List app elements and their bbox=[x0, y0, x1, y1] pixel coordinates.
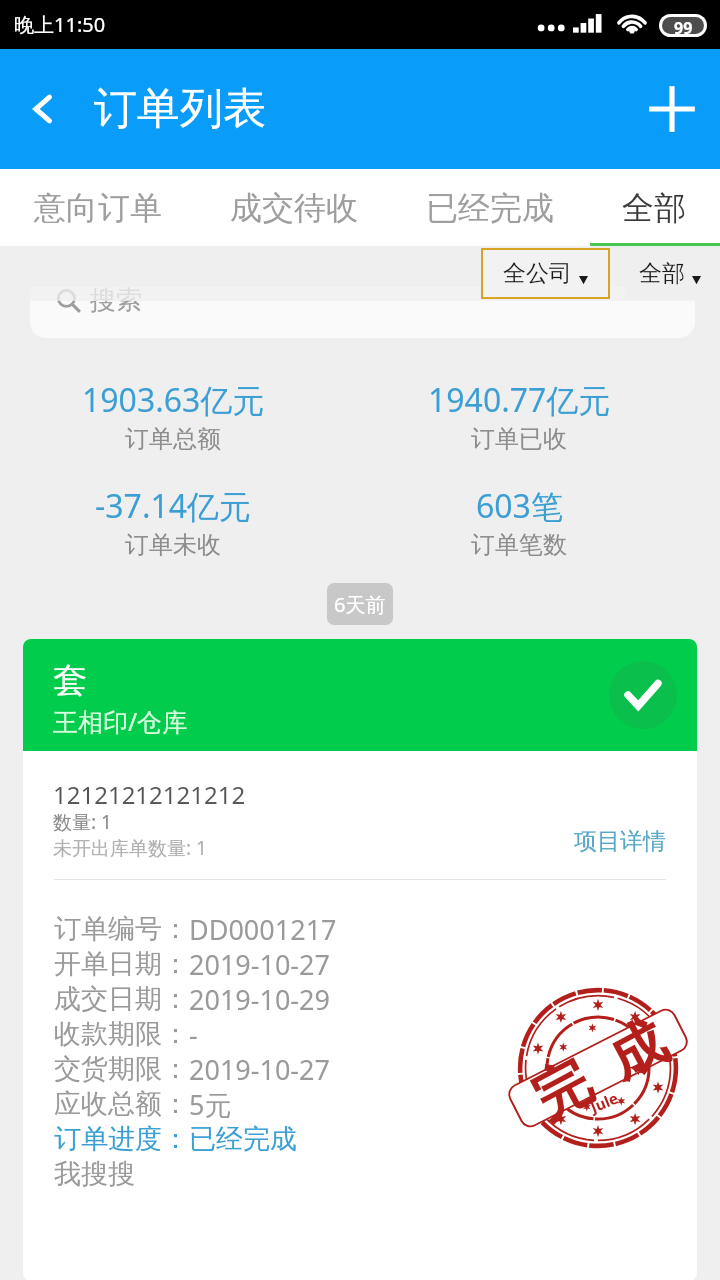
button[interactable]: 已经完成 bbox=[392, 169, 588, 246]
staticText: 订单进度： bbox=[54, 1122, 189, 1156]
staticText: DD0001217 bbox=[189, 911, 337, 946]
staticText: 2019-10-29 bbox=[189, 981, 330, 1016]
staticText: 订单编号： bbox=[54, 912, 189, 946]
staticText: 1940.77亿元 bbox=[428, 378, 611, 422]
staticText: 开单日期： bbox=[54, 947, 189, 981]
staticText: 5元 bbox=[189, 1086, 232, 1121]
staticText: 交货期限： bbox=[54, 1052, 189, 1086]
button[interactable]: 成交待收 bbox=[196, 169, 392, 246]
staticText: 已经完成 bbox=[189, 1122, 297, 1156]
staticText: Jule bbox=[587, 1087, 622, 1117]
staticText: 已经完成 bbox=[426, 188, 554, 228]
staticText: 订单笔数 bbox=[471, 530, 567, 560]
staticText: 我搜搜 bbox=[54, 1157, 135, 1191]
button[interactable]: Back bbox=[0, 49, 86, 169]
staticText: 王相印/仓库 bbox=[53, 704, 188, 738]
staticText: 意向订单 bbox=[34, 188, 162, 228]
staticText: 6天前 bbox=[334, 591, 386, 618]
button[interactable]: 全部 bbox=[588, 169, 720, 246]
staticText: 1903.63亿元 bbox=[82, 378, 265, 422]
button[interactable]: 全公司 bbox=[481, 248, 610, 299]
staticText: 全部 bbox=[639, 259, 685, 288]
staticText: 未开出库单数量: 1 bbox=[53, 835, 207, 861]
staticText: 成交日期： bbox=[54, 982, 189, 1016]
staticText: 应收总额： bbox=[54, 1087, 189, 1121]
button[interactable]: 意向订单 bbox=[0, 169, 196, 246]
staticText: 全部 bbox=[622, 188, 686, 228]
staticText: 套 bbox=[53, 659, 87, 702]
staticText: 2019-10-27 bbox=[189, 1051, 330, 1086]
staticText: 数量: 1 bbox=[53, 809, 112, 835]
staticText: 12121212121212 bbox=[53, 778, 246, 811]
staticText: 603笔 bbox=[476, 484, 563, 528]
button[interactable]: Add order bbox=[624, 49, 720, 169]
staticText: -37.14亿元 bbox=[95, 484, 252, 528]
button[interactable]: 搜索 bbox=[30, 287, 695, 338]
staticText: 搜索 bbox=[90, 287, 142, 317]
staticText: 订单未收 bbox=[125, 530, 221, 560]
staticText: - bbox=[189, 1016, 198, 1051]
staticText: 订单列表 bbox=[94, 82, 266, 136]
staticText: 99 bbox=[674, 17, 693, 34]
staticText: 完 bbox=[521, 1046, 603, 1135]
button[interactable]: 全部 bbox=[625, 248, 715, 299]
staticText: 订单已收 bbox=[471, 424, 567, 454]
staticText: 2019-10-27 bbox=[189, 946, 330, 981]
staticText: 全公司 bbox=[503, 259, 572, 288]
staticText: 订单总额 bbox=[125, 424, 221, 454]
staticText: 成交待收 bbox=[230, 188, 358, 228]
staticText: 收款期限： bbox=[54, 1017, 189, 1051]
staticText: 晚上11:50 bbox=[14, 11, 106, 38]
staticText: 成 bbox=[596, 1006, 678, 1095]
button[interactable]: 项目详情 bbox=[574, 827, 666, 856]
